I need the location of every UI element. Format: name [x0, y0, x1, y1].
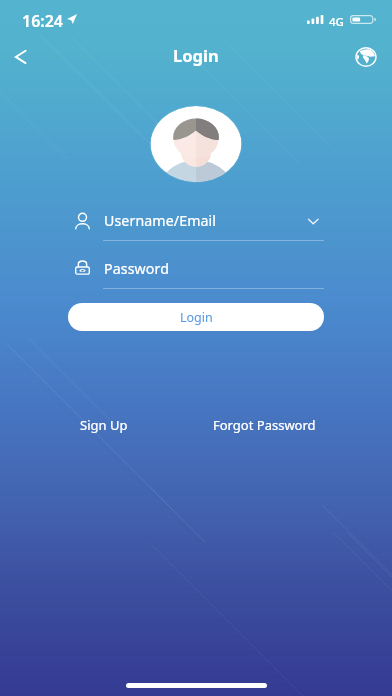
staticText: Sign Up — [80, 416, 128, 434]
button[interactable]: Expand — [304, 212, 322, 230]
staticText: Login — [180, 309, 213, 326]
button[interactable]: Forgot Password — [209, 414, 319, 436]
staticText: Forgot Password — [213, 416, 316, 434]
staticText: 16:24 — [22, 10, 64, 32]
button[interactable]: Sign Up — [72, 414, 136, 436]
button[interactable]: Back — [4, 39, 40, 75]
button[interactable]: Language — [350, 41, 382, 73]
staticText: 4G — [329, 14, 344, 30]
staticText: Login — [173, 44, 219, 66]
button[interactable]: Login — [68, 303, 324, 331]
staticText: Password — [104, 259, 169, 278]
staticText: Username/Email — [104, 211, 217, 230]
